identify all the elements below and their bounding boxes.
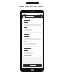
button[interactable]: App bar	[23, 15, 42, 18]
button[interactable]	[24, 48, 41, 56]
button[interactable]	[23, 64, 42, 67]
other: Back	[23, 16, 25, 18]
button[interactable]	[24, 34, 41, 45]
button[interactable]: Phone mockup	[20, 10, 44, 72]
button[interactable]: Home	[31, 69, 34, 71]
button[interactable]	[24, 20, 41, 31]
